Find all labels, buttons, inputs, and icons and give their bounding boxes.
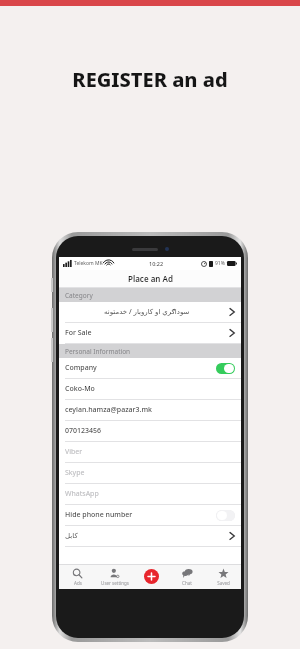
button[interactable]: سوداګري او کاروبار / خدمتونه xyxy=(59,302,241,322)
staticText: Chat xyxy=(182,580,192,586)
staticText: User settings xyxy=(101,580,129,586)
staticText: Personal Information xyxy=(65,347,131,356)
staticText: Viber xyxy=(65,447,83,457)
staticText: Company xyxy=(65,363,97,373)
staticText: 10:22 xyxy=(149,260,164,267)
button[interactable]: Hide phone number xyxy=(59,505,241,525)
staticText: 91% xyxy=(215,260,225,267)
button[interactable]: Viber xyxy=(59,442,241,462)
button[interactable]: 070123456 xyxy=(59,421,241,441)
staticText: REGISTER an ad xyxy=(0,66,300,93)
staticText: سوداګري او کاروبار / خدمتونه xyxy=(104,307,190,317)
button[interactable]: ceylan.hamza@pazar3.mk xyxy=(59,400,241,420)
button[interactable]: Skype xyxy=(59,463,241,483)
button[interactable]: For Sale xyxy=(59,323,241,343)
button[interactable]: WhatsApp xyxy=(59,484,241,504)
staticText: Skype xyxy=(65,468,85,478)
staticText: WhatsApp xyxy=(65,489,99,499)
button[interactable]: User settings xyxy=(96,564,133,589)
staticText: Place an Ad xyxy=(128,273,173,284)
staticText: Saved xyxy=(217,580,230,586)
staticText: Telekom MK xyxy=(74,260,103,267)
staticText: Coko-Mo xyxy=(65,384,95,394)
button[interactable]: Saved xyxy=(205,564,241,589)
button[interactable]: Ads xyxy=(59,564,96,589)
button[interactable]: کابل xyxy=(59,526,241,546)
button[interactable]: Coko-Mo xyxy=(59,379,241,399)
staticText: For Sale xyxy=(65,328,92,338)
staticText: کابل xyxy=(65,532,78,540)
staticText: Ads xyxy=(74,580,82,586)
staticText: Category xyxy=(65,291,93,300)
staticText: Hide phone number xyxy=(65,510,133,520)
staticText: 070123456 xyxy=(65,426,102,436)
button[interactable]: Chat xyxy=(169,564,205,589)
button[interactable]: Add new ad xyxy=(144,569,159,584)
button[interactable]: Company xyxy=(59,358,241,378)
staticText: ceylan.hamza@pazar3.mk xyxy=(65,405,152,415)
